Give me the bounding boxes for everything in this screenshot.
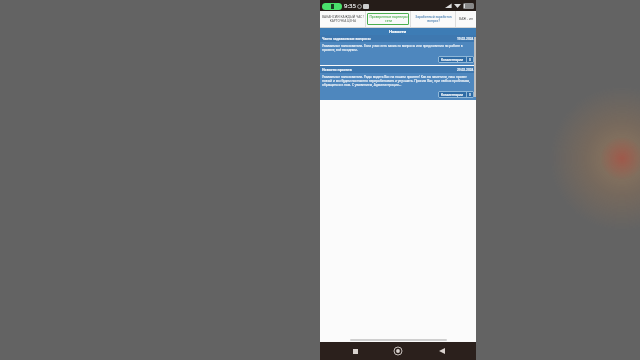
button[interactable]: Комментарии (438, 91, 474, 98)
button[interactable]: Home (389, 342, 407, 360)
button[interactable]: ВАКАНСИИ КАЖДЫЙ ЧАС ! КАРТОЧКА ЦЕНЫ (320, 11, 365, 27)
staticText: Уважаемые пользователи. Рады видеть Вас … (322, 75, 474, 87)
staticText: Заработный заработок вопрос? (415, 15, 452, 23)
staticText: 19.02.2024 (457, 37, 474, 41)
staticText: Новости проекта (322, 67, 457, 72)
button[interactable]: Back (433, 342, 451, 360)
button[interactable]: ВАЖ - ин (456, 11, 476, 27)
button[interactable]: Recents (346, 342, 364, 360)
staticText: Новости (389, 29, 407, 34)
button[interactable]: Заработный заработок вопрос? (411, 11, 455, 27)
staticText: ВАКАНСИИ КАЖДЫЙ ЧАС ! КАРТОЧКА ЦЕНЫ (322, 15, 364, 23)
staticText: Комментарии (441, 58, 464, 62)
staticText: 29.02.2024 (457, 68, 474, 72)
staticText: Уважаемые пользователи. Если у вас есть … (322, 44, 474, 52)
staticText: Часто задаваемые вопросы (322, 36, 457, 41)
staticText: 0 (469, 58, 471, 62)
staticText: Комментарии (441, 93, 464, 97)
button[interactable]: Проверенные партнеры сети (366, 11, 410, 27)
staticText: 0 (469, 93, 471, 97)
staticText: Проверенные партнеры сети (369, 15, 408, 23)
button[interactable]: Комментарии (438, 56, 474, 63)
staticText: 9:35 (344, 2, 356, 10)
button[interactable]: Новости проекта (320, 66, 476, 100)
staticText: ВАЖ - ин (459, 17, 473, 21)
button[interactable]: Часто задаваемые вопросы (320, 35, 476, 65)
